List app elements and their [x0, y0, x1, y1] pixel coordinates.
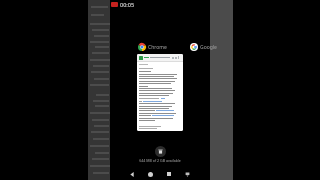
button[interactable]: Google [190, 43, 217, 51]
button[interactable] [88, 0, 110, 180]
staticText: Chrome [148, 44, 167, 51]
button[interactable] [137, 54, 183, 131]
button[interactable]: Chrome [138, 43, 167, 51]
staticText: Google [200, 44, 217, 51]
button[interactable]: Hide keyboard [181, 168, 193, 180]
button[interactable]: Back [126, 168, 138, 180]
button[interactable]: Clear all [155, 146, 166, 157]
button[interactable]: Recent apps [163, 168, 175, 180]
button[interactable]: Home [144, 168, 156, 180]
staticText: 644 MB of 2 GB available [120, 158, 200, 163]
staticText: 00:05 [120, 1, 135, 8]
